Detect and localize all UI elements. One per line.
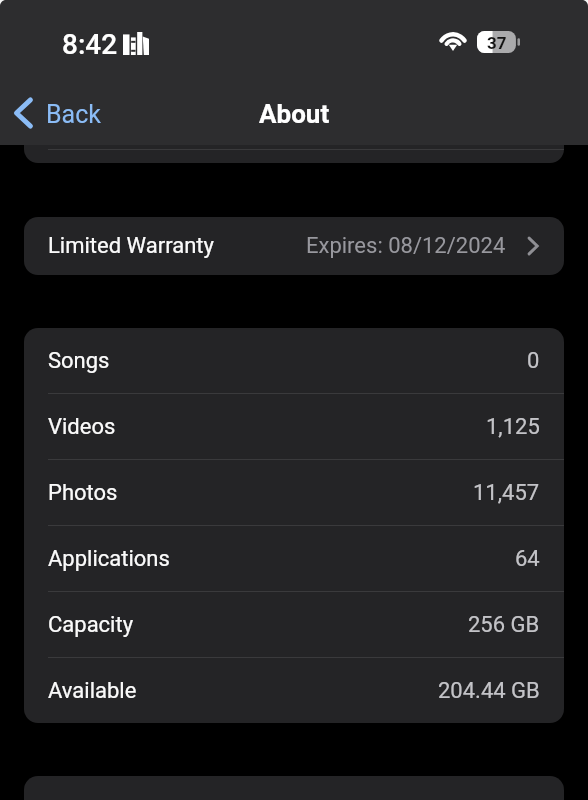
button[interactable]: Capacity bbox=[24, 592, 564, 657]
staticText: 1,125 bbox=[486, 414, 540, 440]
staticText: 37 bbox=[487, 33, 507, 53]
button[interactable]: Limited Warranty bbox=[24, 217, 564, 275]
staticText: Songs bbox=[48, 348, 110, 374]
button[interactable]: Applications bbox=[24, 526, 564, 591]
button[interactable]: Videos bbox=[24, 394, 564, 459]
staticText: 11,457 bbox=[473, 480, 540, 506]
button[interactable]: Back bbox=[8, 93, 111, 135]
staticText: Available bbox=[48, 678, 137, 704]
button[interactable]: Available bbox=[24, 658, 564, 723]
staticText: 0 bbox=[527, 348, 540, 374]
staticText: 64 bbox=[515, 546, 540, 572]
staticText: Back bbox=[46, 100, 101, 129]
staticText: 204.44 GB bbox=[438, 678, 540, 704]
staticText: Videos bbox=[48, 414, 116, 440]
staticText: Applications bbox=[48, 546, 170, 572]
staticText: 8:42 bbox=[62, 28, 118, 61]
staticText: Photos bbox=[48, 480, 118, 506]
button[interactable]: Songs bbox=[24, 328, 564, 393]
staticText: Capacity bbox=[48, 612, 134, 638]
staticText: Expires: 08/12/2024 bbox=[306, 233, 506, 259]
staticText: Limited Warranty bbox=[48, 233, 214, 259]
staticText: 256 GB bbox=[468, 612, 540, 638]
staticText: About bbox=[259, 99, 330, 129]
button[interactable]: Photos bbox=[24, 460, 564, 525]
